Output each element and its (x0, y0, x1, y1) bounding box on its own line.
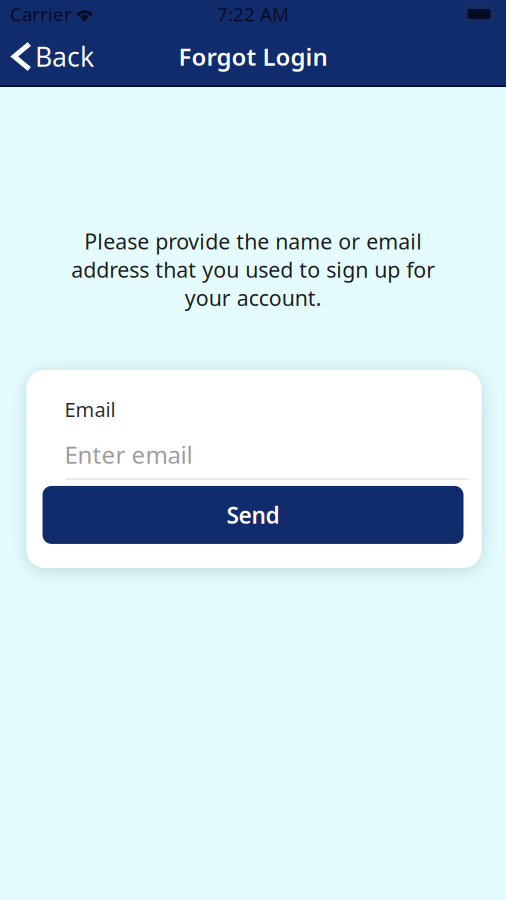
staticText: Carrier (10, 2, 72, 26)
staticText: Forgot Login (178, 41, 327, 72)
button[interactable]: Send (42, 486, 463, 544)
button[interactable]: Back (0, 30, 107, 82)
button[interactable]: Enter email (26, 422, 192, 470)
staticText: Email (64, 396, 115, 423)
staticText: Please provide the name or email address… (71, 227, 435, 312)
staticText: Back (35, 39, 94, 74)
staticText: 7:22 AM (217, 2, 289, 26)
staticText: Send (226, 500, 279, 530)
staticText: Enter email (64, 438, 192, 470)
